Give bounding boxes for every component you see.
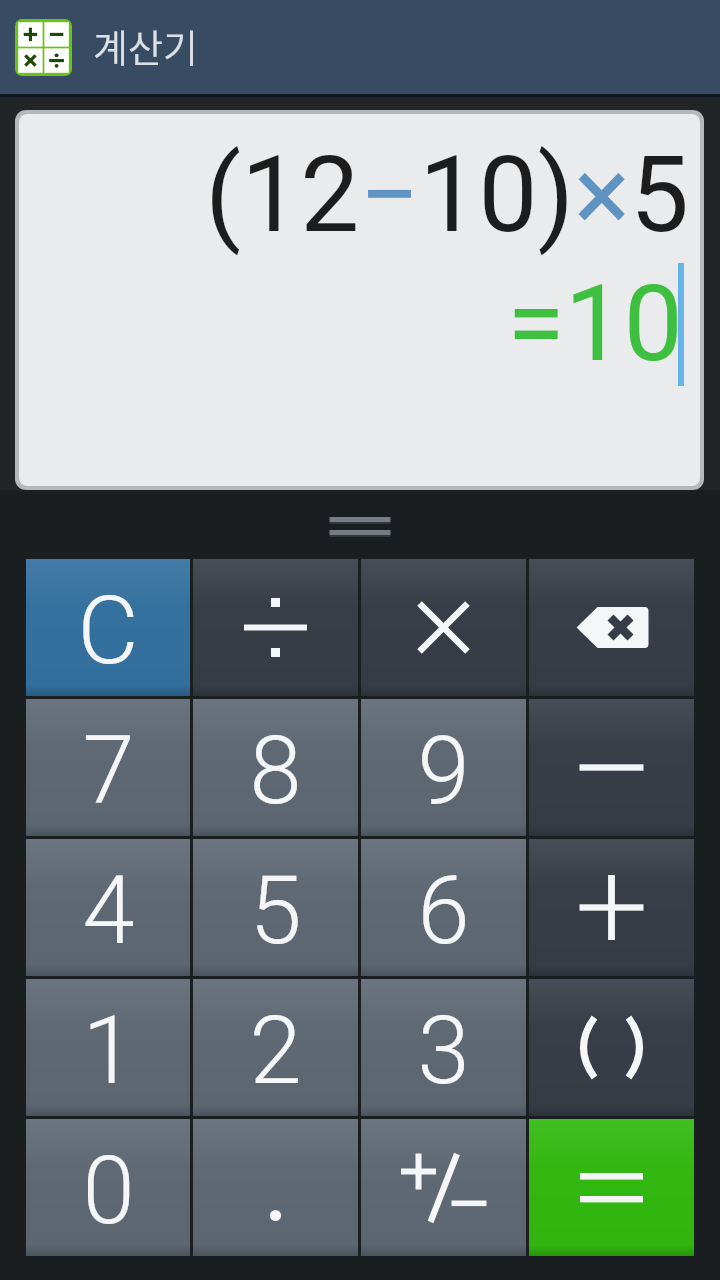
button[interactable]: Plus minus	[361, 1119, 526, 1256]
staticText: 5	[249, 856, 302, 966]
button[interactable]: Equals	[529, 1119, 694, 1256]
button[interactable]: Plus	[529, 839, 694, 976]
button[interactable]: 2	[193, 979, 358, 1116]
staticText: 8	[249, 716, 302, 826]
staticText: 4	[82, 856, 135, 966]
button[interactable]: 0	[26, 1119, 190, 1256]
button[interactable]: Minus	[529, 699, 694, 836]
button[interactable]: 4	[26, 839, 190, 976]
button[interactable]: Parentheses	[529, 979, 694, 1116]
button[interactable]: 1	[26, 979, 190, 1116]
button[interactable]: Backspace	[529, 559, 694, 696]
staticText: 2	[249, 996, 302, 1106]
staticText: 3	[417, 996, 470, 1106]
staticText: 6	[417, 856, 470, 966]
button[interactable]: Resize keypad	[0, 490, 720, 559]
staticText: C	[77, 576, 139, 686]
staticText: 계산기	[93, 18, 198, 73]
button[interactable]: 3	[361, 979, 526, 1116]
staticText: (12−10)×5	[205, 134, 689, 257]
button[interactable]: 6	[361, 839, 526, 976]
staticText: =10	[507, 263, 683, 386]
button[interactable]: 5	[193, 839, 358, 976]
staticText: 7	[82, 716, 135, 826]
button[interactable]: Clear	[26, 559, 190, 696]
button[interactable]: Calculator	[15, 19, 72, 76]
button[interactable]: Multiply	[361, 559, 526, 696]
staticText: 0	[82, 1136, 135, 1246]
staticText: 1	[82, 996, 135, 1106]
button[interactable]: Decimal point	[193, 1119, 358, 1256]
staticText: 9	[417, 716, 470, 826]
button[interactable]: 9	[361, 699, 526, 836]
button[interactable]: (12−10)×5	[19, 114, 700, 486]
button[interactable]: Divide	[193, 559, 358, 696]
button[interactable]: 8	[193, 699, 358, 836]
button[interactable]: 7	[26, 699, 190, 836]
